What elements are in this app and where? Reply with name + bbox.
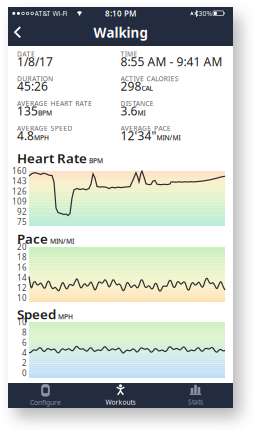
staticText: 8:10 PM xyxy=(105,8,136,19)
staticText: 8 xyxy=(22,327,27,338)
button[interactable]: Back xyxy=(9,21,28,44)
staticText: 75 xyxy=(17,217,27,227)
staticText: AVERAGE SPEED xyxy=(17,124,73,133)
staticText: 12 xyxy=(17,282,27,293)
staticText: Speed MPH xyxy=(17,305,73,323)
button[interactable]: Configure xyxy=(8,383,83,408)
staticText: TIME xyxy=(120,50,137,58)
staticText: 12'34"MIN/MI xyxy=(120,128,180,143)
staticText: AVERAGE PACE xyxy=(120,124,171,133)
staticText: Pace MIN/MI xyxy=(17,230,74,247)
staticText: 1/8/17 xyxy=(17,53,53,69)
staticText: 20 xyxy=(17,242,27,252)
staticText: Configure xyxy=(30,398,61,407)
staticText: 143 xyxy=(12,176,27,186)
staticText: DISTANCE xyxy=(120,99,154,108)
staticText: 92 xyxy=(17,206,27,217)
staticText: 298CAL xyxy=(120,78,153,94)
button[interactable]: Stats xyxy=(158,383,233,408)
staticText: 6 xyxy=(22,337,27,348)
staticText: 8:55 AM - 9:41 AM xyxy=(120,53,222,69)
staticText: 0 xyxy=(22,368,27,378)
staticText: 160 xyxy=(12,166,27,176)
staticText: 4 xyxy=(22,347,27,358)
staticText: AVERAGE HEART RATE xyxy=(17,99,92,108)
staticText: DURATION xyxy=(17,74,53,83)
staticText: 135BPM xyxy=(17,103,52,119)
staticText: 126 xyxy=(12,186,27,197)
staticText: Workouts xyxy=(105,398,135,407)
staticText: 18 xyxy=(17,252,27,262)
staticText: 14 xyxy=(17,272,27,283)
staticText: 2 xyxy=(22,358,27,368)
staticText: 10 xyxy=(17,293,27,303)
staticText: 3.6MI xyxy=(120,103,145,119)
staticText: ACTIVE CALORIES xyxy=(120,74,179,83)
button[interactable]: Workouts xyxy=(83,383,158,408)
staticText: Walking xyxy=(93,24,147,41)
staticText: 45:26 xyxy=(17,78,48,94)
staticText: 10 xyxy=(17,317,27,327)
staticText: AT&T Wi-Fi xyxy=(34,9,67,18)
staticText: 109 xyxy=(12,196,27,207)
staticText: 4.8MPH xyxy=(17,128,49,143)
staticText: Heart Rate BPM xyxy=(17,149,103,167)
staticText: DATE xyxy=(17,50,35,58)
staticText: 16 xyxy=(17,262,27,273)
staticText: 30% xyxy=(199,9,213,18)
staticText: Stats xyxy=(188,397,203,406)
